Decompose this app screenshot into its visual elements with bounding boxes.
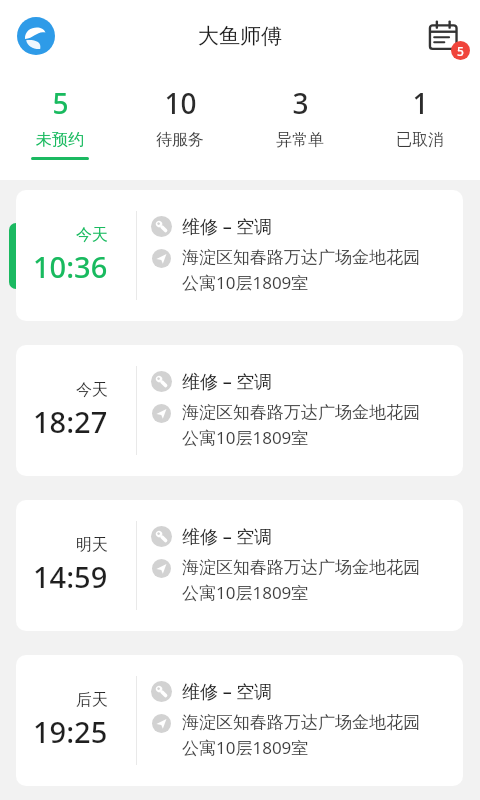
staticText: 10 [164, 84, 197, 122]
staticText: 18:27 [33, 402, 108, 441]
button[interactable]: 明天 [16, 500, 463, 631]
staticText: 公寓10层1809室 [182, 271, 309, 294]
button[interactable]: Logo [14, 14, 58, 58]
button[interactable]: 今天 [16, 190, 463, 321]
staticText: 异常单 [276, 130, 324, 150]
button[interactable]: 10 [120, 72, 240, 180]
staticText: 5 [52, 84, 69, 122]
staticText: 公寓10层1809室 [182, 581, 309, 604]
staticText: 公寓10层1809室 [182, 736, 309, 759]
staticText: 明天 [76, 535, 108, 555]
staticText: 海淀区知春路万达广场金地花园 [182, 557, 420, 578]
staticText: 海淀区知春路万达广场金地花园 [182, 712, 420, 733]
staticText: 维修 – 空调 [182, 679, 273, 704]
button[interactable]: 1 [360, 72, 480, 180]
button[interactable]: 3 [240, 72, 360, 180]
staticText: 后天 [76, 690, 108, 710]
staticText: 海淀区知春路万达广场金地花园 [182, 402, 420, 423]
staticText: 大鱼师傅 [198, 23, 282, 49]
staticText: 今天 [76, 380, 108, 400]
staticText: 公寓10层1809室 [182, 426, 309, 449]
staticText: 待服务 [156, 130, 204, 150]
staticText: 今天 [76, 225, 108, 245]
staticText: 19:25 [33, 712, 108, 751]
button[interactable]: 今天 [16, 345, 463, 476]
staticText: 维修 – 空调 [182, 214, 273, 239]
staticText: 已取消 [396, 130, 444, 150]
staticText: 海淀区知春路万达广场金地花园 [182, 247, 420, 268]
staticText: 维修 – 空调 [182, 524, 273, 549]
staticText: 维修 – 空调 [182, 369, 273, 394]
button[interactable]: 后天 [16, 655, 463, 786]
staticText: 未预约 [36, 130, 84, 150]
button[interactable]: 日程 [422, 14, 466, 58]
button[interactable]: 5 [0, 72, 120, 180]
staticText: 14:59 [33, 557, 108, 596]
staticText: 5 [457, 43, 464, 59]
staticText: 1 [412, 84, 429, 122]
staticText: 3 [292, 84, 309, 122]
staticText: 10:36 [33, 247, 108, 286]
